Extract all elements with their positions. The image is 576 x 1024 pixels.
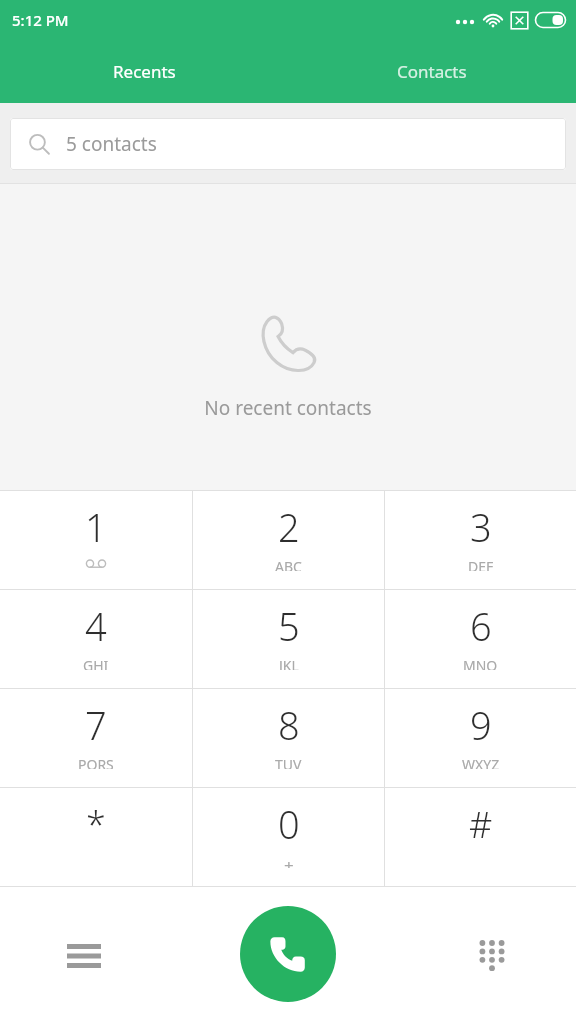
- staticText: 1: [85, 501, 107, 553]
- button[interactable]: 1: [0, 491, 192, 589]
- staticText: 4: [85, 600, 107, 652]
- button[interactable]: 2: [193, 491, 384, 589]
- staticText: 8: [278, 699, 300, 751]
- staticText: #: [469, 800, 493, 849]
- button[interactable]: #: [385, 788, 576, 886]
- button[interactable]: Call: [240, 906, 336, 1002]
- staticText: *: [86, 800, 106, 849]
- staticText: 2: [278, 501, 300, 553]
- staticText: 9: [470, 699, 492, 751]
- staticText: 5:12 PM: [12, 10, 69, 30]
- staticText: +: [284, 854, 294, 868]
- staticText: WXYZ: [462, 755, 500, 769]
- button[interactable]: 5 contacts: [10, 118, 566, 170]
- staticText: Recents: [113, 60, 176, 83]
- button[interactable]: Recents: [0, 40, 288, 103]
- button[interactable]: 7: [0, 689, 192, 787]
- staticText: 7: [85, 699, 107, 751]
- button[interactable]: *: [0, 788, 192, 886]
- button[interactable]: 4: [0, 590, 192, 688]
- staticText: MNO: [463, 656, 498, 670]
- button[interactable]: 5: [193, 590, 384, 688]
- button[interactable]: Dialpad: [464, 928, 520, 984]
- staticText: DEF: [468, 557, 494, 571]
- staticText: PQRS: [78, 755, 114, 769]
- staticText: TUV: [275, 755, 302, 769]
- staticText: 5: [278, 600, 300, 652]
- button[interactable]: 8: [193, 689, 384, 787]
- staticText: 6: [470, 600, 492, 652]
- staticText: 0: [278, 798, 300, 850]
- button[interactable]: Contacts: [288, 40, 576, 103]
- staticText: Contacts: [397, 60, 467, 83]
- staticText: ABC: [275, 557, 302, 571]
- button[interactable]: Call log menu: [56, 928, 112, 984]
- staticText: No recent contacts: [204, 395, 372, 421]
- button[interactable]: 3: [385, 491, 576, 589]
- staticText: GHI: [83, 656, 109, 670]
- staticText: 3: [470, 501, 492, 553]
- button[interactable]: 9: [385, 689, 576, 787]
- staticText: JKL: [279, 656, 299, 670]
- staticText: 5 contacts: [66, 131, 157, 157]
- button[interactable]: 6: [385, 590, 576, 688]
- button[interactable]: 0: [193, 788, 384, 886]
